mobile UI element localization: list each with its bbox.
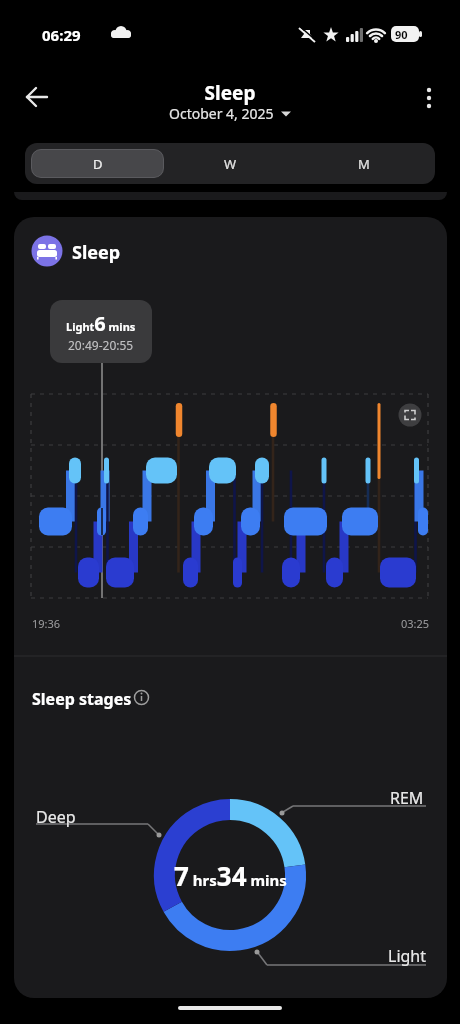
staticText: October 4, 2025: [169, 104, 274, 123]
staticText: 03:25: [401, 616, 430, 631]
staticText: D: [93, 155, 103, 173]
button[interactable]: [130, 686, 154, 710]
staticText: 19:36: [32, 616, 61, 631]
staticText: REM: [390, 787, 424, 809]
staticText: W: [224, 155, 237, 173]
staticText: 90: [395, 27, 408, 42]
staticText: 7 hrs34 mins: [174, 858, 287, 893]
staticText: 20:49-20:55: [68, 337, 134, 353]
staticText: Sleep: [0, 80, 460, 106]
button[interactable]: October 4, 2025: [0, 104, 460, 123]
staticText: Sleep stages: [32, 688, 132, 710]
button[interactable]: W: [164, 143, 297, 184]
staticText: Deep: [36, 806, 76, 828]
staticText: Light: [388, 945, 427, 967]
staticText: M: [358, 155, 370, 173]
button[interactable]: [412, 80, 448, 116]
button[interactable]: [396, 401, 424, 429]
button[interactable]: M: [297, 143, 430, 184]
staticText: 06:29: [42, 25, 81, 45]
staticText: Light6 mins: [66, 310, 136, 337]
button[interactable]: D: [31, 149, 164, 178]
staticText: Sleep: [72, 240, 121, 265]
button[interactable]: [16, 80, 56, 116]
